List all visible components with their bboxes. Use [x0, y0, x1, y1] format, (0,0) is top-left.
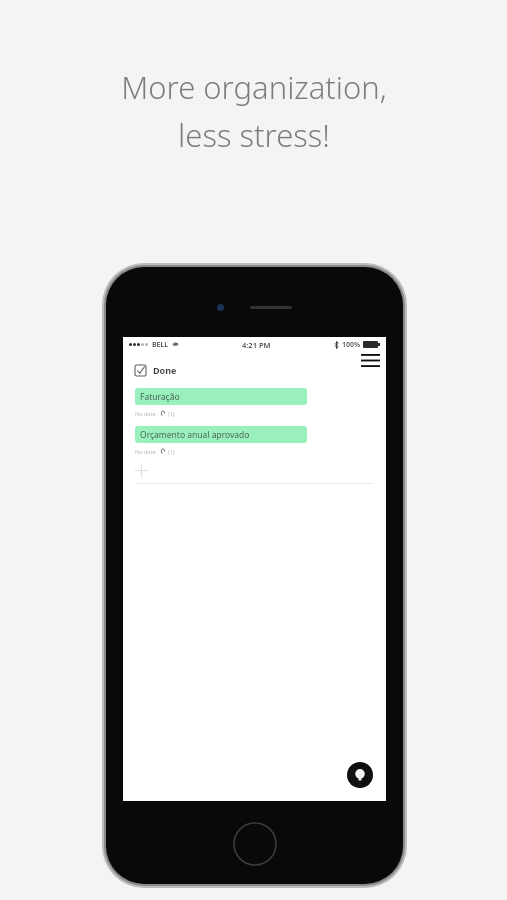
staticText: Done [153, 364, 177, 376]
staticText: (1) [168, 448, 175, 455]
staticText: No date [135, 448, 156, 455]
staticText: Faturação [140, 391, 180, 403]
button[interactable]: Menu [354, 344, 386, 376]
button[interactable]: Voice input [347, 762, 373, 788]
staticText: No date [135, 410, 156, 417]
button[interactable]: Orçamento anual aprovado [123, 426, 386, 455]
button[interactable]: Faturação [123, 388, 386, 417]
button[interactable]: Add task [123, 464, 386, 484]
staticText: (1) [168, 410, 175, 417]
staticText: 4:21 PM [242, 340, 271, 350]
staticText: BELL [152, 340, 169, 350]
staticText: More organization, [121, 66, 387, 108]
staticText: 100% [342, 340, 361, 350]
button[interactable]: Done [135, 364, 177, 376]
staticText: less stress! [178, 114, 330, 156]
staticText: Orçamento anual aprovado [140, 429, 250, 441]
